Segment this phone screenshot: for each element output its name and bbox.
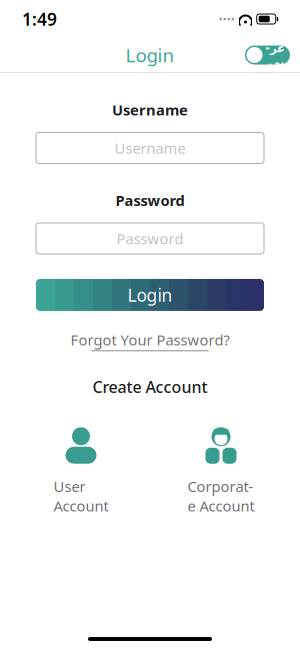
button[interactable]: User Account [38,426,124,515]
button[interactable]: Forgot Your Password? [70,330,229,351]
staticText: Password [115,190,184,210]
button[interactable]: Login [36,279,264,311]
staticText: Login [125,43,174,67]
staticText: Username [112,100,188,119]
staticText: Forgot Your Password? [70,330,229,349]
staticText: Password [116,229,183,248]
staticText: Corporate Account [187,476,254,515]
button[interactable]: Corporate Account [178,426,264,515]
staticText: User Account [53,476,108,515]
staticText: عربي [264,41,284,69]
staticText: Create Account [92,376,207,397]
staticText: Username [114,138,185,158]
button[interactable]: Switch language to Arabic [245,45,290,64]
staticText: Login [127,283,172,306]
staticText: 1:49 [22,7,57,30]
